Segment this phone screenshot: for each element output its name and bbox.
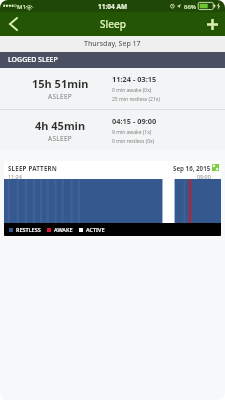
staticText: Sep 16, 2015: [173, 164, 211, 172]
staticText: RESTLESS: [16, 226, 41, 233]
button[interactable]: Add: [199, 12, 225, 36]
staticText: 0 min restless (0x): [112, 138, 155, 145]
staticText: SLEEP PATTERN: [8, 164, 58, 172]
staticText: 11:24 - 03:15: [112, 74, 157, 84]
staticText: 04:15 - 09:00: [112, 116, 157, 126]
staticText: 4h 45min: [35, 118, 86, 133]
button[interactable]: Back: [0, 12, 26, 36]
staticText: ACTIVE: [86, 226, 105, 233]
staticText: ASLEEP: [48, 134, 73, 143]
button[interactable]: 15h 51min: [0, 68, 225, 109]
staticText: ASLEEP: [48, 92, 73, 101]
staticText: 15h 51min: [32, 76, 89, 91]
button[interactable]: SLEEP PATTERN: [4, 161, 221, 236]
staticText: Thursday, Sep 17: [84, 39, 141, 49]
button[interactable]: 4h 45min: [0, 110, 225, 151]
staticText: 25 min restless (21x): [112, 96, 160, 103]
staticText: 09:00: [197, 173, 211, 179]
staticText: M1: [17, 3, 26, 11]
staticText: 0 min awake (0x): [112, 87, 152, 94]
staticText: 66%: [184, 3, 196, 11]
staticText: 11:24: [8, 173, 22, 179]
staticText: LOGGED SLEEP: [8, 55, 58, 65]
staticText: AWAKE: [54, 226, 73, 233]
staticText: 11:04 AM: [98, 2, 128, 11]
staticText: Sleep: [100, 17, 126, 31]
staticText: 9 min awake (1x): [112, 129, 152, 136]
